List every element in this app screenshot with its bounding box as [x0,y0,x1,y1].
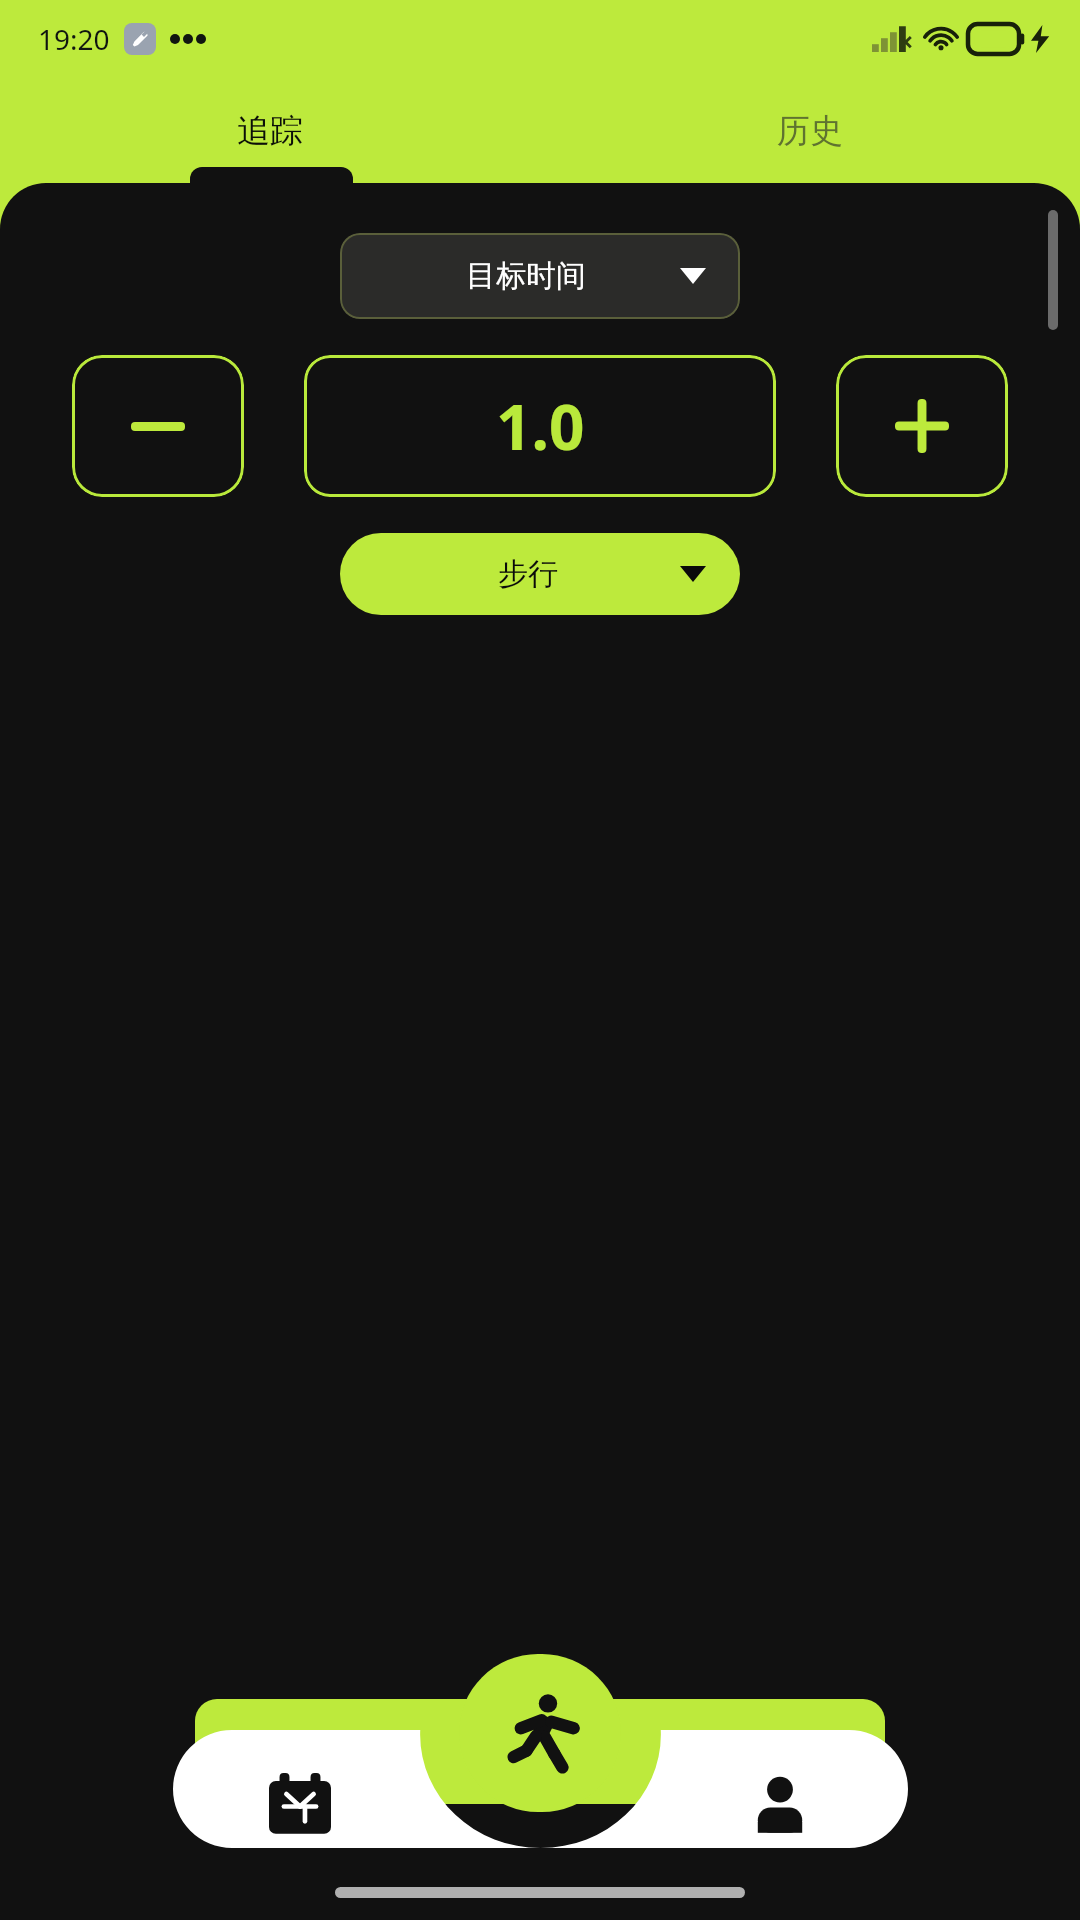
staticText: 1.0 [496,384,585,468]
staticText: 目标时间 [466,257,586,295]
button[interactable]: Decrease [72,355,244,497]
staticText: 历史 [777,110,843,152]
staticText: 19:20 [38,20,110,58]
button[interactable]: Profile [742,1766,818,1842]
staticText: 步行 [498,555,558,593]
button[interactable]: Increase [836,355,1008,497]
staticText: 开始! [497,1726,584,1778]
button[interactable]: 历史 [540,78,1080,183]
staticText: 追踪 [237,110,303,152]
button[interactable]: 开始! [195,1699,885,1804]
button[interactable]: 步行 [340,533,740,615]
button[interactable]: Today [262,1766,338,1842]
button[interactable]: 追踪 [0,78,540,183]
button[interactable]: 目标时间 [340,233,740,319]
button[interactable]: Start activity [459,1654,621,1812]
button[interactable]: 1.0 [304,355,776,497]
